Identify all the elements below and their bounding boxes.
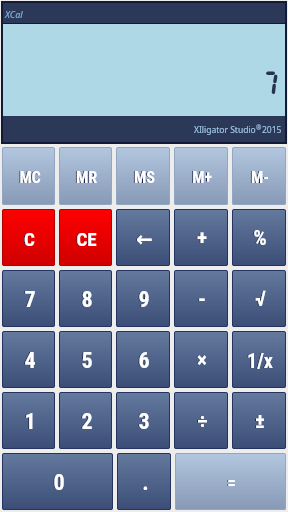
staticText: 7 — [24, 287, 36, 313]
staticText: 5 — [81, 348, 93, 374]
staticText: % — [252, 226, 266, 251]
staticText: ← — [136, 227, 153, 250]
staticText: 7 — [23, 287, 35, 313]
staticText: × — [196, 348, 206, 373]
staticText: ± — [254, 409, 264, 434]
staticText: × — [197, 348, 207, 373]
staticText: CE — [76, 228, 97, 250]
staticText: 3 — [138, 409, 150, 435]
staticText: 8 — [81, 287, 93, 313]
staticText: √ — [254, 287, 265, 312]
staticText: 6 — [138, 348, 150, 374]
button[interactable]: 9 — [116, 270, 170, 327]
button[interactable]: × — [174, 331, 228, 388]
staticText: M- — [250, 168, 268, 187]
staticText: MR — [76, 168, 97, 187]
staticText: MS — [133, 168, 154, 187]
staticText: 1 — [23, 409, 35, 435]
button[interactable]: M+ — [174, 147, 228, 205]
button[interactable]: - — [174, 270, 228, 327]
button[interactable]: % — [232, 209, 286, 266]
staticText: = — [226, 473, 235, 493]
staticText: 6 — [137, 348, 149, 374]
button[interactable]: 8 — [59, 270, 112, 327]
staticText: + — [197, 226, 207, 251]
button[interactable]: ± — [232, 392, 286, 449]
staticText: ® — [256, 123, 262, 132]
staticText: + — [196, 226, 206, 251]
button[interactable]: C — [2, 209, 55, 266]
button[interactable]: 1/x — [232, 331, 286, 388]
button[interactable]: + — [174, 209, 228, 266]
button[interactable]: 0 — [2, 453, 113, 510]
staticText: - — [198, 287, 206, 313]
staticText: 2015 — [262, 124, 282, 136]
staticText: √ — [255, 287, 266, 312]
button[interactable]: MS — [116, 147, 170, 205]
button[interactable]: CE — [59, 209, 112, 266]
button[interactable]: MC — [2, 147, 55, 205]
button[interactable]: . — [117, 453, 171, 510]
staticText: ÷ — [197, 409, 208, 434]
staticText: MC — [18, 168, 40, 187]
staticText: 1 — [24, 409, 36, 435]
staticText: MS — [134, 168, 155, 187]
staticText: 4 — [23, 348, 35, 374]
staticText: 3 — [137, 409, 149, 435]
button[interactable]: √ — [232, 270, 286, 327]
staticText: XCal — [5, 8, 23, 20]
staticText: ± — [255, 409, 265, 434]
staticText: 0 — [52, 470, 64, 496]
staticText: 0 — [53, 470, 65, 496]
staticText: = — [227, 473, 236, 493]
staticText: C — [23, 228, 34, 250]
button[interactable]: Backspace — [116, 209, 170, 266]
staticText: 2 — [80, 409, 92, 435]
button[interactable]: = — [175, 453, 286, 510]
staticText: ← — [135, 227, 152, 250]
staticText: . — [142, 470, 149, 496]
staticText: M+ — [192, 168, 212, 187]
staticText: M- — [251, 168, 269, 187]
staticText: . — [141, 470, 148, 496]
button[interactable]: 2 — [59, 392, 112, 449]
staticText: 1/x — [246, 349, 272, 372]
staticText: XIligator Studio — [194, 124, 256, 136]
button[interactable]: MR — [59, 147, 112, 205]
button[interactable]: 1 — [2, 392, 55, 449]
button[interactable]: 7 — [2, 270, 55, 327]
staticText: - — [197, 287, 205, 313]
staticText: C — [24, 228, 35, 250]
staticText: ÷ — [196, 409, 207, 434]
button[interactable]: ÷ — [174, 392, 228, 449]
button[interactable]: 6 — [116, 331, 170, 388]
staticText: 4 — [24, 348, 36, 374]
staticText: 9 — [138, 287, 150, 313]
staticText: MR — [75, 168, 96, 187]
staticText: 1/x — [247, 349, 273, 372]
staticText: CE — [75, 228, 96, 250]
staticText: M+ — [191, 168, 211, 187]
staticText: 9 — [137, 287, 149, 313]
button[interactable]: M- — [232, 147, 286, 205]
staticText: 8 — [80, 287, 92, 313]
button[interactable]: 4 — [2, 331, 55, 388]
staticText: % — [253, 226, 267, 251]
staticText: 5 — [80, 348, 92, 374]
staticText: MC — [19, 168, 41, 187]
staticText: 2 — [81, 409, 93, 435]
button[interactable]: 5 — [59, 331, 112, 388]
button[interactable]: 3 — [116, 392, 170, 449]
